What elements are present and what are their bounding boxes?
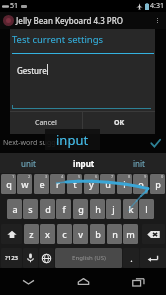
staticText: 4:31 (150, 1, 164, 11)
staticText: 51 (10, 1, 19, 11)
staticText: OK (114, 118, 125, 128)
staticText: g (78, 203, 84, 215)
button[interactable]: j (106, 199, 121, 219)
button[interactable]: l (139, 199, 154, 219)
staticText: l (145, 203, 148, 215)
button[interactable]: c (57, 224, 72, 244)
button[interactable]: g (73, 199, 88, 219)
staticText: 1 (12, 174, 15, 179)
button[interactable]: o (133, 174, 148, 194)
staticText: x (45, 228, 50, 240)
staticText: unit (21, 158, 36, 169)
button[interactable]: a (7, 199, 22, 219)
staticText: a (12, 203, 18, 215)
button[interactable]: Shift (1, 224, 22, 244)
staticText: z (29, 228, 34, 240)
button[interactable]: ?123 (1, 248, 22, 268)
staticText: 2 (28, 174, 31, 179)
button[interactable]: y (84, 174, 99, 194)
staticText: ?123 (5, 254, 18, 262)
staticText: s (28, 203, 33, 215)
button[interactable]: p (150, 174, 165, 194)
staticText: 5 (78, 174, 81, 179)
staticText: p (155, 178, 161, 190)
staticText: 8 (128, 174, 131, 179)
staticText: 4 (61, 174, 64, 179)
staticText: i (123, 178, 126, 190)
button[interactable]: e (34, 174, 49, 194)
button[interactable]: Change language (39, 248, 54, 268)
staticText: Cancel (35, 118, 57, 128)
button[interactable]: Enter (140, 248, 166, 268)
button[interactable]: k (123, 199, 138, 219)
staticText: k (128, 203, 134, 215)
button[interactable]: n (107, 224, 122, 244)
staticText: q (6, 178, 12, 190)
staticText: h (95, 203, 101, 215)
button[interactable]: . (123, 248, 139, 268)
staticText: j (112, 203, 115, 215)
button[interactable]: q (1, 174, 16, 194)
button[interactable]: r (50, 174, 65, 194)
staticText: e (39, 178, 45, 190)
staticText: c (62, 228, 67, 240)
staticText: u (105, 178, 111, 190)
staticText: Jelly Bean Keyboard 4.3 PRO (16, 15, 124, 26)
staticText: input (56, 131, 89, 149)
staticText: . (130, 252, 133, 264)
button[interactable]: h (90, 199, 105, 219)
button[interactable]: unit (0, 153, 56, 173)
button[interactable]: init (111, 153, 166, 173)
button[interactable]: x (40, 224, 55, 244)
staticText: 9 (144, 174, 147, 179)
staticText: b (95, 228, 101, 240)
staticText: f (62, 203, 66, 215)
staticText: v (78, 228, 83, 240)
button[interactable]: w (17, 174, 32, 194)
staticText: r (56, 178, 60, 190)
button[interactable]: t (67, 174, 82, 194)
button[interactable]: u (100, 174, 115, 194)
staticText: 3 (45, 174, 48, 179)
button[interactable]: z (24, 224, 39, 244)
staticText: 6 (95, 174, 98, 179)
button[interactable]: Voice input (23, 248, 38, 268)
button[interactable]: Recents (111, 268, 166, 295)
staticText: y (89, 178, 94, 190)
button[interactable]: input (56, 153, 111, 173)
button[interactable]: Next-word suggestions (0, 134, 166, 152)
button[interactable]: m (123, 224, 138, 244)
button[interactable]: d (40, 199, 55, 219)
staticText: 0 (161, 174, 164, 179)
button[interactable]: OK (83, 112, 155, 134)
button[interactable]: Home (56, 268, 111, 295)
staticText: Test current settings (12, 33, 104, 46)
staticText: English (US) (72, 254, 106, 262)
button[interactable]: v (73, 224, 88, 244)
staticText: n (112, 228, 118, 240)
button[interactable]: English (US) (55, 248, 122, 268)
button[interactable]: s (23, 199, 38, 219)
staticText: o (138, 178, 144, 190)
staticText: m (126, 228, 135, 240)
staticText: input (73, 158, 95, 169)
staticText: init (133, 158, 145, 169)
staticText: w (21, 178, 29, 190)
staticText: 7 (111, 174, 114, 179)
button[interactable]: b (90, 224, 105, 244)
button[interactable]: i (117, 174, 132, 194)
staticText: Gesture (17, 65, 47, 76)
staticText: t (73, 178, 77, 190)
button[interactable]: Hide keyboard (0, 268, 56, 295)
button[interactable]: f (56, 199, 71, 219)
button[interactable]: More options (151, 15, 163, 27)
button[interactable]: Backspace (142, 224, 165, 244)
staticText: Next-word suggestions (3, 138, 80, 148)
staticText: d (45, 203, 51, 215)
button[interactable]: Cancel (10, 112, 82, 134)
